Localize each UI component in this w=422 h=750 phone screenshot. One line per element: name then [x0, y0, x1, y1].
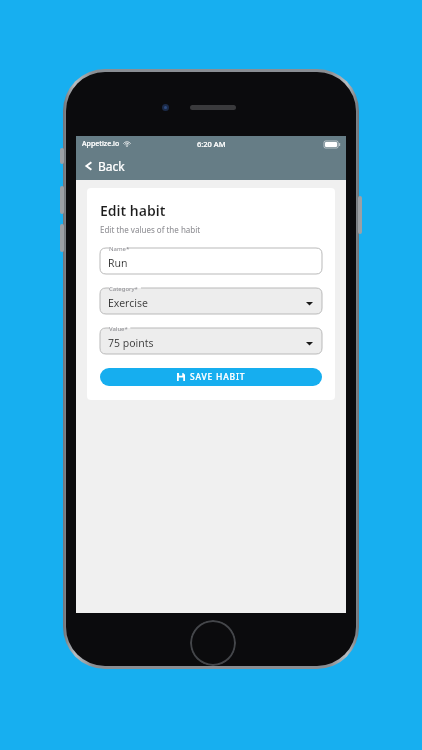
- staticText: SAVE HABIT: [190, 371, 246, 383]
- staticText: Run: [108, 256, 128, 270]
- staticText: Appetize.io: [82, 139, 120, 149]
- button[interactable]: Back: [76, 152, 133, 180]
- button[interactable]: SAVE HABIT: [100, 368, 322, 386]
- staticText: Name*: [109, 245, 130, 253]
- staticText: Back: [98, 158, 125, 174]
- staticText: 75 points: [108, 336, 154, 350]
- staticText: Value*: [109, 325, 128, 333]
- staticText: Edit habit: [100, 201, 166, 220]
- staticText: Exercise: [108, 296, 148, 310]
- staticText: Category*: [109, 285, 138, 293]
- staticText: Edit the values of the habit: [100, 224, 201, 235]
- button[interactable]: Name*: [100, 248, 322, 274]
- button[interactable]: Category*: [100, 288, 322, 314]
- button[interactable]: Value*: [100, 328, 322, 354]
- staticText: 6:20 AM: [197, 139, 226, 149]
